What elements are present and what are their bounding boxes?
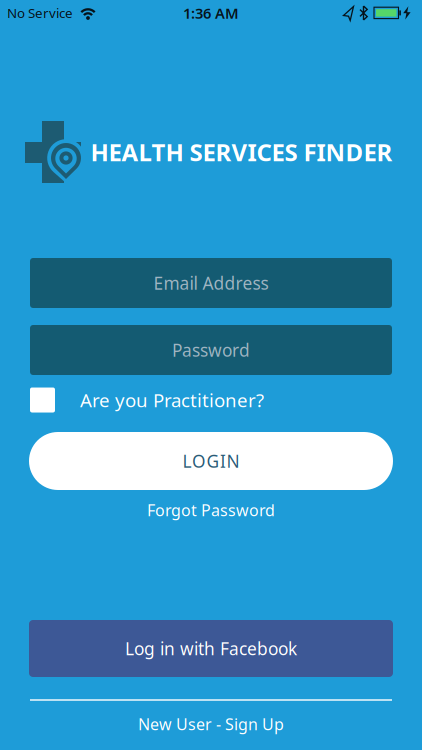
button[interactable]: Forgot Password — [147, 499, 275, 521]
staticText: Email Address — [153, 271, 268, 294]
staticText: New User - Sign Up — [138, 713, 284, 735]
staticText: Log in with Facebook — [125, 637, 297, 660]
button[interactable]: Email Address — [30, 258, 392, 308]
button[interactable]: LOGIN — [29, 432, 393, 490]
staticText: No Service — [7, 4, 73, 22]
staticText: LOGIN — [182, 449, 239, 472]
button[interactable]: Are you Practitioner? — [30, 387, 392, 412]
staticText: Forgot Password — [147, 499, 275, 521]
staticText: HEALTH SERVICES FINDER — [90, 136, 392, 168]
staticText: Password — [172, 338, 250, 361]
button[interactable]: Password — [30, 325, 392, 375]
button[interactable]: Log in with Facebook — [29, 620, 393, 677]
button[interactable]: New User - Sign Up — [138, 713, 284, 735]
staticText: 1:36 AM — [183, 3, 239, 23]
staticText: Are you Practitioner? — [80, 388, 264, 412]
